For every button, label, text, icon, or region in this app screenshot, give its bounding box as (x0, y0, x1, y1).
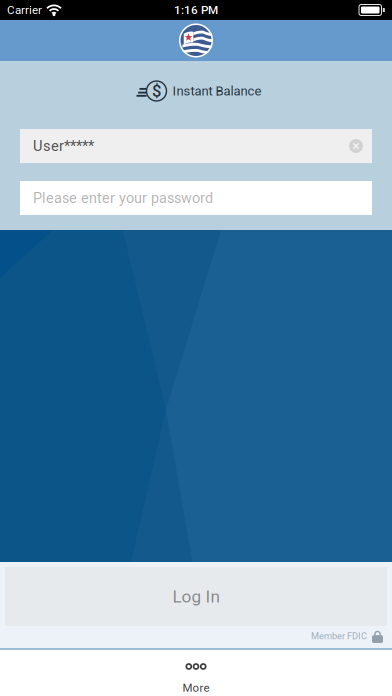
staticText: User***** (33, 137, 94, 155)
staticText: $ (152, 81, 161, 101)
staticText: Log In (172, 586, 219, 607)
button[interactable]: $ (133, 81, 258, 101)
staticText: 1:16 PM (174, 3, 218, 17)
button[interactable]: More (0, 650, 392, 696)
staticText: Instant Balance (172, 83, 261, 99)
staticText: Please enter your password (33, 190, 213, 206)
button[interactable]: Log In (0, 562, 392, 626)
staticText: More (182, 681, 209, 694)
button[interactable]: Bank home (179, 23, 213, 57)
staticText: Member FDIC (311, 631, 367, 641)
staticText: Carrier (7, 3, 42, 17)
